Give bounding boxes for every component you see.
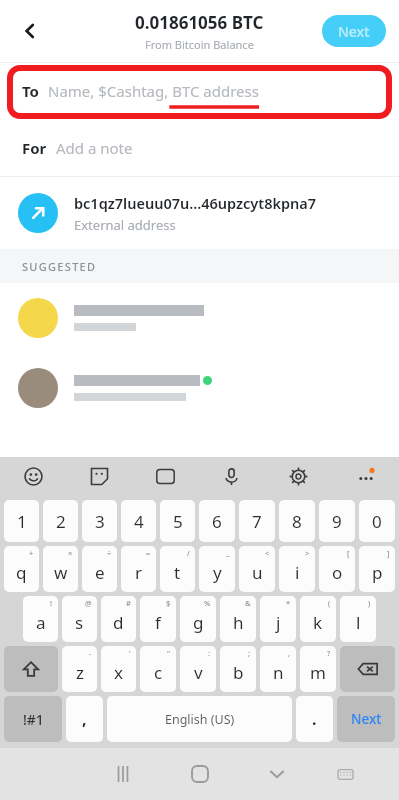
button[interactable]: ] [359, 546, 395, 592]
button[interactable]: bc1qz7lueuu07u…46upzcyt8kpna7 [0, 177, 399, 249]
staticText: Name, $Cashtag, BTC address [48, 81, 259, 101]
button[interactable]: Emoji [0, 457, 66, 495]
button[interactable]: Next [337, 696, 395, 742]
button[interactable]: # [101, 596, 136, 642]
staticText: l [356, 611, 361, 634]
button[interactable]: 8 [279, 500, 315, 542]
button[interactable]: @ [62, 596, 97, 642]
staticText: p [372, 561, 383, 584]
staticText: For [22, 138, 47, 158]
button[interactable]: 2 [43, 500, 78, 542]
button[interactable]: ( [300, 596, 336, 642]
button[interactable]: Shift [4, 646, 58, 692]
button[interactable]: Keyboard settings [265, 457, 332, 495]
staticText: English (US) [165, 711, 235, 728]
button[interactable]: Stickers [66, 457, 132, 495]
staticText: * [286, 598, 291, 608]
staticText: 2 [56, 510, 66, 533]
button[interactable]: Backspace [340, 646, 395, 692]
button[interactable]: * [260, 596, 296, 642]
staticText: : [208, 648, 211, 658]
staticText: Next [351, 710, 382, 728]
button[interactable]: . [296, 696, 333, 742]
button[interactable]: & [220, 596, 256, 642]
staticText: # [126, 598, 131, 608]
button[interactable]: 3 [82, 500, 117, 542]
staticText: i [295, 561, 300, 584]
button[interactable]: [ [319, 546, 355, 592]
button[interactable]: GIF [132, 457, 198, 495]
button[interactable]: !#1 [4, 696, 62, 742]
staticText: , [288, 648, 291, 658]
staticText: 0 [372, 510, 382, 533]
button[interactable]: ÷ [82, 546, 117, 592]
staticText: × [68, 548, 73, 558]
button[interactable]: 4 [121, 500, 156, 542]
button[interactable]: × [43, 546, 78, 592]
button[interactable]: ! [23, 596, 58, 642]
staticText: z [76, 661, 84, 684]
button[interactable]: - [62, 646, 97, 692]
button[interactable]: $ [140, 596, 176, 642]
button[interactable]: Next [322, 15, 386, 47]
button[interactable]: Recents [84, 748, 161, 800]
button[interactable] [0, 283, 399, 353]
button[interactable]: To [0, 62, 399, 120]
button[interactable]: Hide keyboard [238, 748, 315, 800]
button[interactable]: ' [101, 646, 136, 692]
staticText: u [252, 561, 263, 584]
button[interactable]: / [160, 546, 195, 592]
button[interactable]: : [180, 646, 216, 692]
button[interactable]: , [66, 696, 103, 742]
staticText: v [194, 661, 203, 684]
staticText: o [332, 561, 343, 584]
button[interactable]: ) [340, 596, 376, 642]
button[interactable]: " [140, 646, 176, 692]
button[interactable]: For [0, 120, 399, 176]
button[interactable]: More options [332, 457, 399, 495]
button[interactable]: = [121, 546, 156, 592]
button[interactable]: 0 [359, 500, 395, 542]
staticText: 4 [134, 510, 144, 533]
staticText: From Bitcoin Balance [145, 37, 254, 52]
button[interactable] [0, 353, 399, 423]
button[interactable]: 7 [239, 500, 275, 542]
staticText: External address [74, 216, 176, 234]
staticText: bc1qz7lueuu07u…46upzcyt8kpna7 [74, 193, 317, 213]
button[interactable]: Back [8, 9, 52, 53]
button[interactable]: English (US) [107, 696, 292, 742]
button[interactable]: 1 [4, 500, 39, 542]
button[interactable]: 5 [160, 500, 195, 542]
staticText: " [167, 648, 171, 658]
staticText: 5 [173, 510, 183, 533]
button[interactable]: 6 [199, 500, 235, 542]
staticText: e [95, 561, 105, 584]
staticText: 0.01861056 BTC [135, 11, 264, 34]
button[interactable]: Voice input [198, 457, 265, 495]
button[interactable]: % [180, 596, 216, 642]
staticText: d [113, 611, 124, 634]
button[interactable]: > [279, 546, 315, 592]
button[interactable]: Change keyboard [315, 748, 376, 800]
staticText: 9 [332, 510, 342, 533]
staticText: r [135, 561, 143, 584]
staticText: % [204, 598, 211, 608]
staticText: ÷ [107, 548, 112, 558]
staticText: 3 [95, 510, 105, 533]
button[interactable]: , [260, 646, 296, 692]
button[interactable]: + [4, 546, 39, 592]
staticText: q [16, 561, 27, 584]
button[interactable]: ; [220, 646, 256, 692]
button[interactable]: ? [300, 646, 336, 692]
staticText: ; [248, 648, 251, 658]
staticText: ] [387, 548, 390, 558]
button[interactable]: < [239, 546, 275, 592]
button[interactable]: _ [199, 546, 235, 592]
staticText: - [89, 648, 92, 658]
staticText: Add a note [56, 138, 133, 158]
button[interactable]: 9 [319, 500, 355, 542]
staticText: !#1 [23, 710, 44, 729]
button[interactable]: Home [161, 748, 238, 800]
staticText: & [245, 598, 251, 608]
staticText: , [82, 708, 87, 730]
